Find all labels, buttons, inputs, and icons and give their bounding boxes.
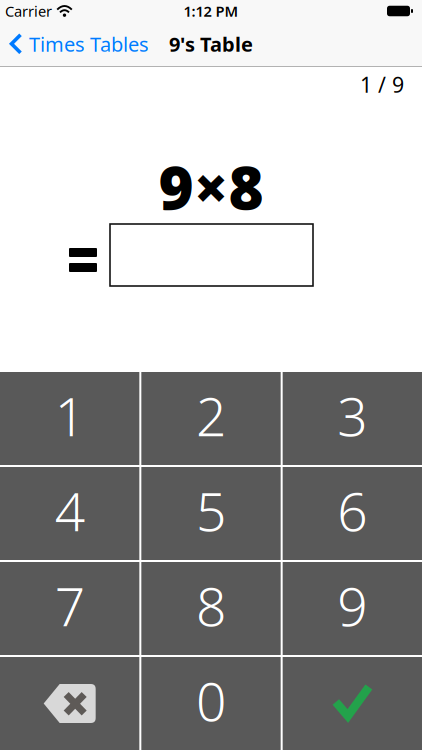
staticText: 5	[196, 475, 226, 546]
button[interactable]: Times Tables	[0, 31, 149, 57]
staticText: 1	[55, 380, 85, 451]
staticText: 8	[196, 570, 226, 641]
staticText: 1 / 9	[360, 70, 404, 99]
staticText: Times Tables	[29, 31, 149, 57]
staticText: 6	[337, 475, 367, 546]
button[interactable]: 1	[0, 372, 139, 465]
staticText: 9×8	[158, 147, 263, 226]
button[interactable]: 6	[283, 467, 422, 560]
staticText: 0	[196, 665, 226, 736]
button[interactable]: 8	[141, 562, 281, 655]
staticText: 4	[55, 475, 85, 546]
button[interactable]: 3	[283, 372, 422, 465]
staticText: 9	[337, 570, 367, 641]
button[interactable]	[0, 657, 139, 750]
staticText: 3	[337, 380, 367, 451]
staticText: 2	[196, 380, 226, 451]
staticText: Carrier	[5, 1, 52, 21]
button[interactable]: 4	[0, 467, 139, 560]
button[interactable]: 5	[141, 467, 281, 560]
staticText: 7	[55, 570, 85, 641]
button[interactable]: 2	[141, 372, 281, 465]
staticText: 1:12 PM	[183, 1, 238, 21]
button[interactable]	[110, 224, 313, 286]
staticText: 9's Table	[169, 31, 253, 57]
button[interactable]	[283, 657, 422, 750]
button[interactable]: 7	[0, 562, 139, 655]
button[interactable]: 9	[283, 562, 422, 655]
button[interactable]: 0	[141, 657, 281, 750]
